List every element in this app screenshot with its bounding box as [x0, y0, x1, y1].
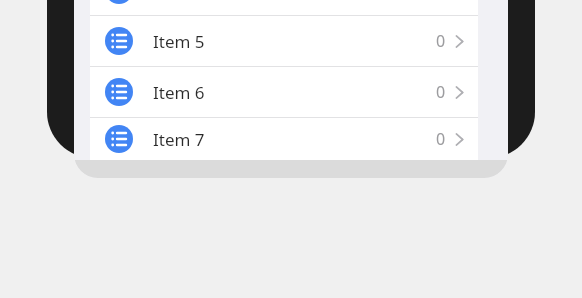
button[interactable]: List: [90, 67, 478, 117]
other: List: [105, 78, 133, 106]
other: List: [105, 0, 133, 4]
staticText: Item 7: [153, 128, 205, 151]
staticText: Item 6: [153, 81, 205, 104]
button[interactable]: Add List: [74, 160, 508, 178]
other: List: [105, 125, 133, 153]
staticText: 0: [436, 128, 446, 150]
button[interactable]: List: [90, 118, 478, 160]
staticText: Item 5: [153, 30, 205, 53]
button[interactable]: List: [90, 0, 478, 15]
button[interactable]: List: [90, 16, 478, 66]
staticText: 0: [436, 30, 446, 52]
staticText: 0: [436, 81, 446, 103]
other: List: [105, 27, 133, 55]
